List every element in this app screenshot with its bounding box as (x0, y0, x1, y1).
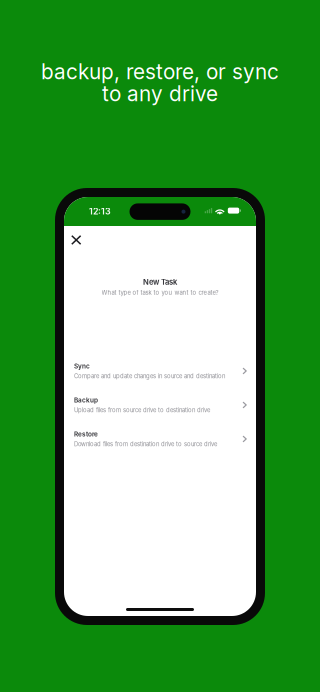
staticText: 12:13 (89, 206, 111, 217)
staticText: Compare and update changes in source and… (74, 373, 225, 380)
staticText: Download files from destination drive to… (74, 441, 217, 448)
staticText: What type of task to you want to create? (101, 289, 218, 296)
button[interactable]: Close (65, 228, 87, 250)
staticText: backup, restore, or sync (41, 59, 279, 84)
staticText: New Task (143, 277, 177, 286)
button[interactable]: Backup (64, 388, 256, 422)
staticText: Backup (74, 396, 98, 404)
staticText: to any drive (102, 81, 218, 106)
staticText: Sync (74, 362, 90, 370)
button[interactable]: Sync (64, 354, 256, 388)
button[interactable]: Restore (64, 422, 256, 456)
staticText: Restore (74, 430, 98, 438)
staticText: Upload files from source drive to destin… (74, 407, 210, 414)
